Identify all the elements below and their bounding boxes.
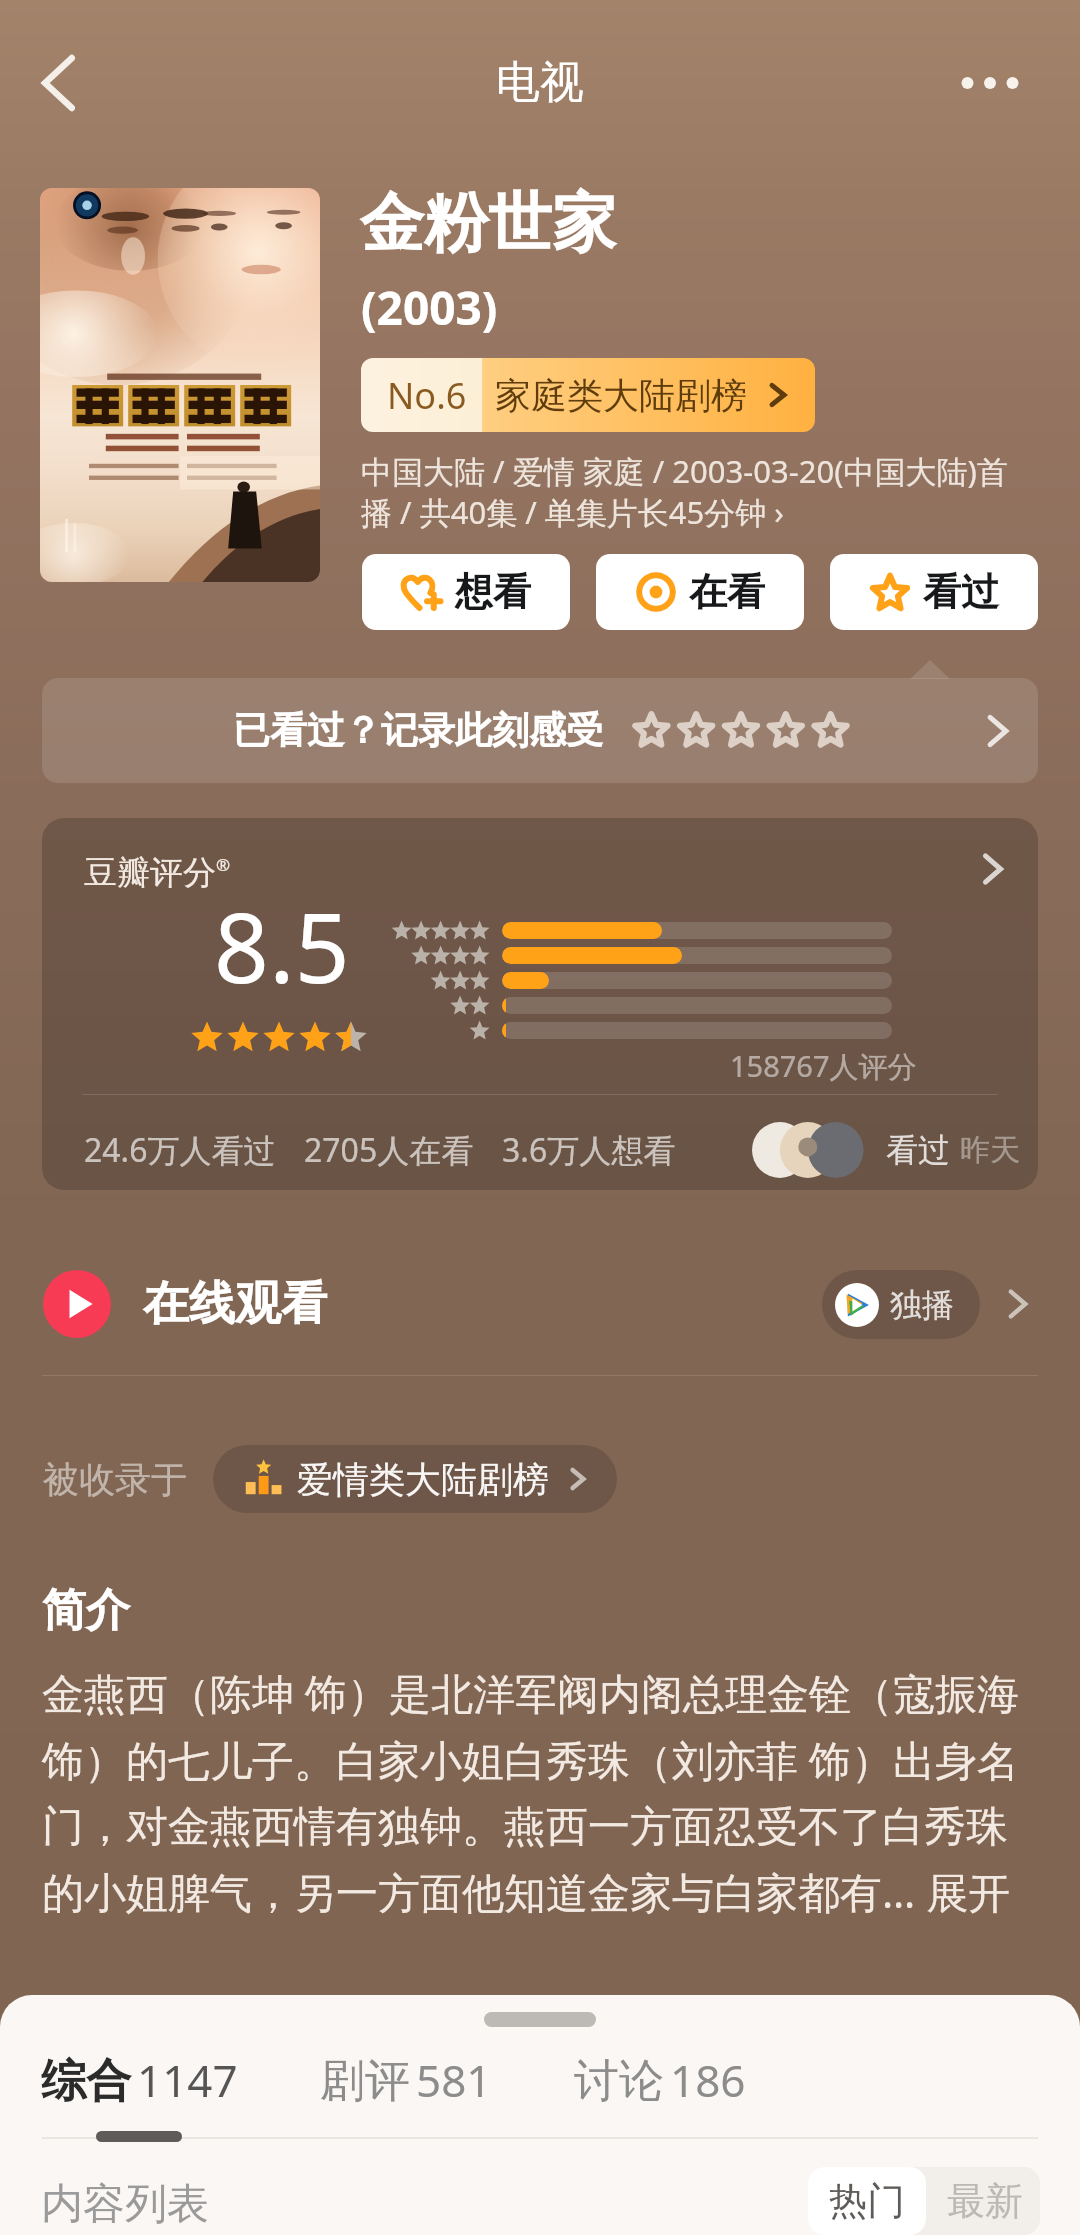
staticText: 最新 [947,2177,1023,2225]
button[interactable]: 热门 [808,2167,926,2235]
staticText: 已看过？记录此刻感受 [233,707,603,754]
button[interactable]: 看过 [830,554,1038,630]
staticText: 581 [416,2050,492,2110]
staticText: 中国大陆 / 爱情 家庭 / 2003-03-20(中国大陆)首播 / 共40集… [361,450,1033,534]
button[interactable]: No.6 [361,358,815,432]
staticText: 简介 [42,1583,130,1638]
staticText: 看过 [886,1130,950,1170]
button[interactable]: Back [16,40,102,126]
staticText: 热门 [829,2177,905,2225]
staticText: 1147 [137,2050,238,2110]
button[interactable]: 独播 [822,1270,980,1339]
staticText: 家庭类大陆剧榜 [495,373,747,418]
staticText: 想看 [455,568,531,616]
staticText: ® [216,853,231,876]
button[interactable]: Poster [40,188,320,582]
staticText: 8.5 [214,880,350,1011]
button[interactable]: 在看 [596,554,804,630]
staticText: 在线观看 [143,1275,327,1333]
button[interactable]: 爱情类大陆剧榜 [213,1445,617,1513]
button[interactable]: 剧评 [320,2050,492,2110]
button[interactable]: 想看 [362,554,570,630]
staticText: 昨天 [960,1131,1020,1169]
staticText: 讨论 [574,2053,664,2110]
staticText: 电视 [496,55,584,110]
staticText: 看过 [923,568,999,616]
staticText: 内容列表 [41,2178,209,2231]
staticText: No.6 [387,371,467,420]
staticText: 在看 [689,568,765,616]
staticText: 爱情类大陆剧榜 [297,1457,549,1502]
staticText: 豆瓣评分 [84,852,216,894]
staticText: 3.6万人想看 [502,1128,676,1172]
staticText: 158767人评分 [730,1046,917,1086]
staticText: 独播 [890,1285,954,1325]
staticText: 2705人在看 [304,1128,474,1172]
button[interactable]: 在线观看 [0,1248,1080,1360]
staticText: 24.6万人看过 [84,1128,276,1172]
button[interactable]: 综合 [41,2050,238,2110]
button[interactable]: 已看过？记录此刻感受 [42,678,1038,783]
staticText: 金粉世家 [360,183,616,264]
staticText: 被收录于 [43,1457,187,1502]
staticText: (2003) [361,276,498,339]
staticText: 金燕西（陈坤 饰）是北洋军阀内阁总理金铨（寇振海饰）的七儿子。白家小姐白秀珠（刘… [42,1664,1042,1920]
button[interactable]: More options [947,40,1033,126]
button[interactable]: 最新 [926,2167,1044,2235]
button[interactable]: 讨论 [574,2050,746,2110]
button[interactable]: 豆瓣评分 [42,818,1038,1190]
staticText: 186 [670,2050,746,2110]
staticText: 剧评 [320,2053,410,2110]
staticText: 综合 [41,2053,131,2110]
